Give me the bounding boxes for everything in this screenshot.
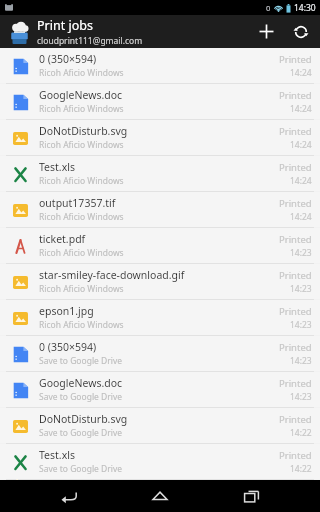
staticText: Save to Google Drive — [39, 463, 123, 475]
staticText: Ricoh Aficio Windows — [39, 67, 124, 79]
staticText: Print jobs — [37, 17, 93, 34]
staticText: Printed — [279, 341, 312, 354]
button[interactable]: Refresh — [284, 15, 318, 48]
button[interactable]: Recents — [229, 480, 273, 512]
button[interactable]: ticket.pdf — [0, 228, 320, 263]
button[interactable]: Test.xls — [0, 444, 320, 479]
staticText: output17357.tif — [39, 196, 116, 210]
staticText: Test.xls — [39, 160, 75, 174]
staticText: 14:23 — [290, 247, 312, 259]
staticText: Save to Google Drive — [39, 427, 123, 439]
button[interactable]: Back — [47, 480, 91, 512]
staticText: Printed — [279, 449, 312, 462]
staticText: Printed — [279, 89, 312, 102]
staticText: GoogleNews.doc — [39, 88, 123, 102]
staticText: Printed — [279, 197, 312, 210]
staticText: 14:22 — [290, 427, 312, 439]
staticText: star-smiley-face-download.gif — [39, 268, 185, 282]
staticText: Ricoh Aficio Windows — [39, 103, 124, 115]
staticText: Printed — [279, 377, 312, 390]
staticText: 14:24 — [290, 67, 312, 79]
button[interactable]: Home — [138, 480, 182, 512]
staticText: DoNotDisturb.svg — [39, 412, 128, 426]
staticText: Ricoh Aficio Windows — [39, 283, 124, 295]
staticText: 14:24 — [290, 103, 312, 115]
button[interactable]: Test.xls — [0, 156, 320, 191]
button[interactable]: star-smiley-face-download.gif — [0, 264, 320, 299]
staticText: GoogleNews.doc — [39, 376, 123, 390]
staticText: Printed — [279, 233, 312, 246]
staticText: 14:23 — [290, 319, 312, 331]
button[interactable]: DoNotDisturb.svg — [0, 408, 320, 443]
staticText: 14:24 — [290, 211, 312, 223]
button[interactable]: 0 (350×594) — [0, 48, 320, 83]
staticText: 14:24 — [290, 175, 312, 187]
staticText: Save to Google Drive — [39, 391, 123, 403]
staticText: Ricoh Aficio Windows — [39, 211, 124, 223]
staticText: 0 (350×594) — [39, 340, 97, 354]
staticText: Ricoh Aficio Windows — [39, 319, 124, 331]
staticText: ticket.pdf — [39, 232, 86, 246]
staticText: Printed — [279, 161, 312, 174]
button[interactable]: output17357.tif — [0, 192, 320, 227]
button[interactable]: Add — [248, 15, 284, 48]
staticText: 14:30 — [294, 2, 316, 14]
staticText: DoNotDisturb.svg — [39, 124, 128, 138]
staticText: Printed — [279, 53, 312, 66]
button[interactable]: GoogleNews.doc — [0, 372, 320, 407]
button[interactable]: Google Cloud Print — [5, 18, 33, 46]
staticText: 14:23 — [290, 391, 312, 403]
staticText: Printed — [279, 269, 312, 282]
button[interactable]: DoNotDisturb.svg — [0, 120, 320, 155]
staticText: 14:22 — [290, 463, 312, 475]
staticText: Ricoh Aficio Windows — [39, 175, 124, 187]
staticText: Test.xls — [39, 448, 75, 462]
staticText: Printed — [279, 305, 312, 318]
button[interactable]: GoogleNews.doc — [0, 84, 320, 119]
staticText: Ricoh Aficio Windows — [39, 139, 124, 151]
staticText: epson1.jpg — [39, 304, 94, 318]
staticText: Printed — [279, 413, 312, 426]
staticText: cloudprint111@gmail.com — [37, 35, 143, 47]
staticText: 0 — [266, 3, 271, 13]
button[interactable]: epson1.jpg — [0, 300, 320, 335]
staticText: 0 (350×594) — [39, 52, 97, 66]
staticText: 14:23 — [290, 355, 312, 367]
staticText: Printed — [279, 125, 312, 138]
staticText: 14:23 — [290, 283, 312, 295]
button[interactable]: 0 (350×594) — [0, 336, 320, 371]
staticText: Ricoh Aficio Windows — [39, 247, 124, 259]
staticText: Save to Google Drive — [39, 355, 123, 367]
staticText: 14:24 — [290, 139, 312, 151]
